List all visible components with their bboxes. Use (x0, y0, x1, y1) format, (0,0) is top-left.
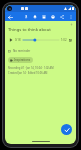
button[interactable]: Share (58, 13, 66, 21)
staticText: Things to think about (8, 27, 51, 33)
button[interactable]: Pin (22, 13, 30, 21)
staticText: Inspirations (14, 58, 31, 62)
button[interactable]: Play recording (8, 37, 14, 43)
button[interactable]: Archive (40, 13, 48, 21)
button[interactable]: No reminder (8, 48, 31, 54)
staticText: No reminder (13, 49, 31, 53)
button[interactable]: More options (67, 13, 75, 21)
staticText: Recording #1 · Jan 14, 10:04 · 1:02 AM (8, 66, 54, 70)
button[interactable]: Inspirations (8, 57, 33, 63)
button[interactable]: Recording options (68, 38, 73, 43)
staticText: 1:02 (61, 38, 67, 42)
button[interactable]: Done (61, 124, 72, 135)
button[interactable]: Reminder (31, 13, 39, 21)
button[interactable]: Back (6, 13, 14, 21)
button[interactable]: Palette (49, 13, 57, 21)
staticText: 0:18 (15, 38, 21, 42)
button[interactable]: Playback position (23, 37, 59, 43)
staticText: Created Jan 14 · Edited 10:06 AM (8, 71, 48, 75)
